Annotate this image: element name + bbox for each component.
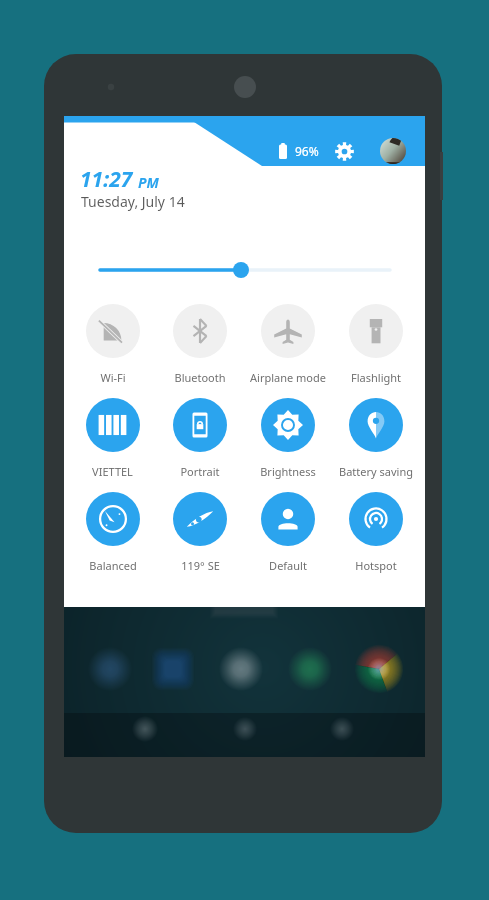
staticText: PM [138,173,159,192]
button[interactable]: User profile [380,138,406,164]
staticText: Balanced [89,558,137,573]
button[interactable]: 119° SE [156,492,244,573]
button[interactable]: Balanced [69,492,156,573]
button[interactable]: Brightness [244,398,332,479]
button[interactable]: Brightness slider [100,258,390,282]
staticText: Default [269,558,307,573]
button[interactable]: Portrait [156,398,244,479]
staticText: 11:27 [80,165,133,194]
button[interactable]: Airplane mode [244,304,332,385]
button[interactable]: Bluetooth [156,304,244,385]
button[interactable]: Settings [330,137,358,165]
staticText: 96% [295,143,319,159]
staticText: VIETTEL [92,464,133,479]
staticText: Brightness [260,464,316,479]
staticText: 119° SE [181,558,220,573]
staticText: Portrait [180,464,220,479]
staticText: Tuesday, July 14 [81,192,185,211]
staticText: Airplane mode [250,370,326,385]
staticText: Bluetooth [174,370,226,385]
button[interactable]: Battery saving [332,398,420,479]
button[interactable]: Wi-Fi [69,304,156,385]
staticText: Flashlight [351,370,401,385]
button[interactable]: Flashlight [332,304,420,385]
staticText: Wi-Fi [100,370,126,385]
button[interactable]: Battery 96 percent [279,143,319,159]
button[interactable]: VIETTEL [69,398,156,479]
staticText: Battery saving [339,464,413,479]
button[interactable]: Hotspot [332,492,420,573]
button[interactable]: Default [244,492,332,573]
staticText: Hotspot [355,558,397,573]
